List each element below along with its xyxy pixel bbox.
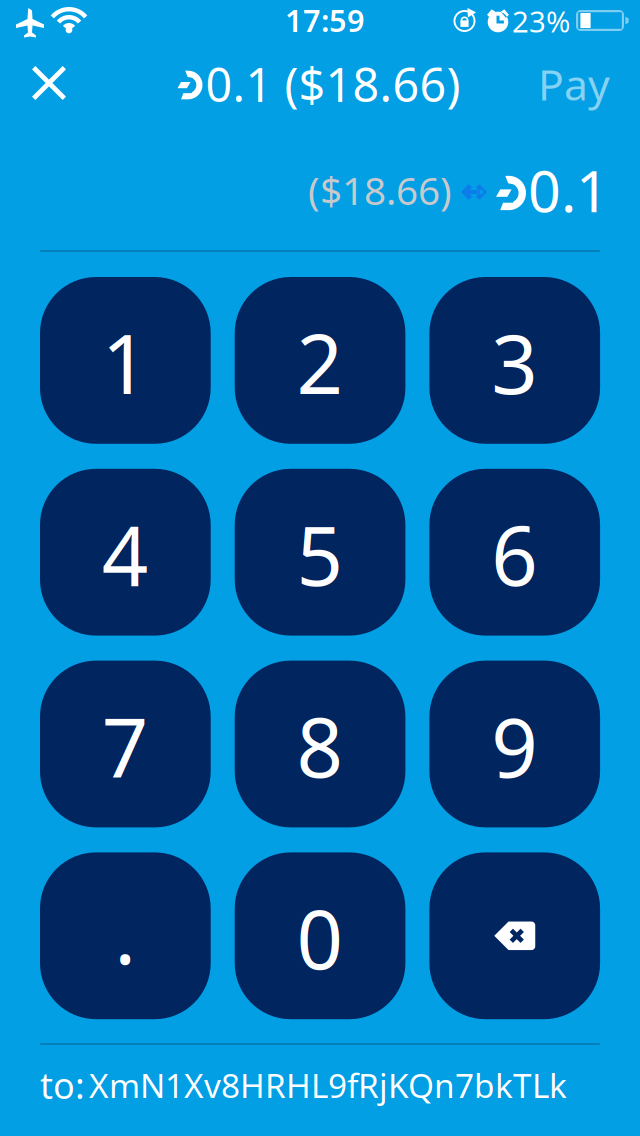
button[interactable]: 9 <box>429 661 600 827</box>
staticText: 8 <box>296 692 343 800</box>
staticText: 0.1 ($18.66) <box>205 53 460 115</box>
staticText: 5 <box>296 500 343 608</box>
button[interactable]: 1 <box>40 277 211 444</box>
staticText: 9 <box>491 692 538 800</box>
button[interactable]: . <box>40 852 211 1019</box>
staticText: XmN1Xv8HRHL9fRjKQn7bkTLk <box>89 1063 567 1107</box>
staticText: ($18.66) <box>308 164 452 216</box>
staticText: 0 <box>296 884 343 992</box>
staticText: 4 <box>102 500 149 608</box>
button[interactable]: 3 <box>429 277 600 444</box>
button[interactable]: 8 <box>235 661 405 827</box>
button[interactable]: 6 <box>429 469 600 636</box>
staticText: 0.1 <box>528 152 609 228</box>
button[interactable]: 7 <box>40 661 211 827</box>
button[interactable]: 0 <box>235 852 405 1019</box>
staticText: to: <box>40 1061 85 1109</box>
staticText: . <box>114 879 136 987</box>
staticText: 2 <box>296 308 343 416</box>
staticText: Pay <box>538 56 610 112</box>
button[interactable]: Pay <box>514 47 634 121</box>
staticText: 7 <box>102 692 149 800</box>
button[interactable]: Close <box>4 46 94 120</box>
button[interactable]: 2 <box>235 277 405 444</box>
button[interactable]: 5 <box>235 469 405 636</box>
staticText: 1 <box>102 308 149 416</box>
staticText: 17:59 <box>285 0 365 40</box>
button[interactable]: 4 <box>40 469 211 636</box>
button[interactable]: to: <box>40 1060 620 1110</box>
staticText: 23% <box>512 1 570 40</box>
button[interactable]: Delete <box>429 852 600 1019</box>
staticText: 3 <box>491 308 538 416</box>
staticText: 6 <box>491 500 538 608</box>
